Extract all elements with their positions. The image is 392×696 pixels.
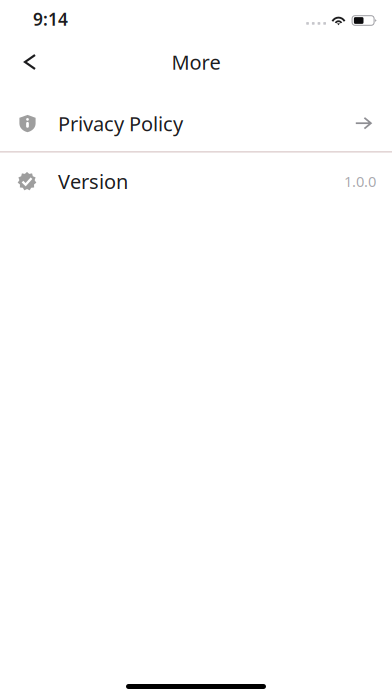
staticText: 9:14 [33, 7, 68, 30]
staticText: Privacy Policy [58, 110, 183, 137]
staticText: More [171, 49, 220, 75]
button[interactable]: Privacy Policy [0, 96, 392, 151]
staticText: 1.0.0 [344, 172, 376, 191]
staticText: Version [58, 168, 128, 195]
button[interactable]: Back [11, 42, 48, 82]
